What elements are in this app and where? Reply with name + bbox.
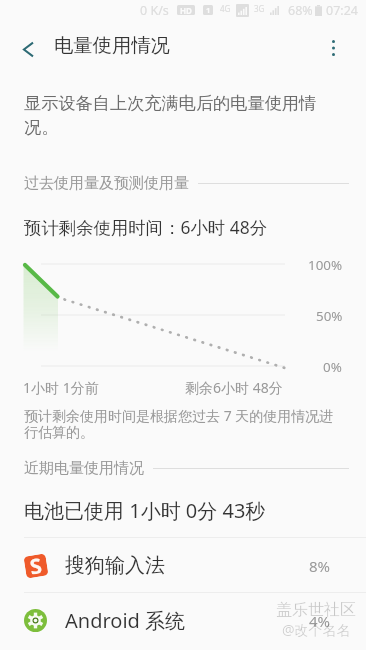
staticText: 100%	[308, 256, 343, 274]
staticText: 预计剩余使用时间是根据您过去 7 天的使用情况进行估算的。	[24, 406, 336, 441]
button[interactable]: More options	[310, 22, 356, 68]
staticText: @改个名名	[282, 620, 351, 639]
staticText: 显示设备自上次充满电后的电量使用情况。	[24, 92, 326, 138]
staticText: 0 K/s	[140, 2, 169, 19]
staticText: S	[28, 554, 43, 575]
staticText: Android 系统	[65, 607, 309, 634]
staticText: 1小时 1分前	[23, 378, 99, 397]
staticText: 近期电量使用情况	[24, 459, 144, 478]
button[interactable]: Android 系统	[0, 593, 366, 648]
staticText: 剩余6小时 48分	[185, 378, 283, 397]
staticText: 1	[206, 5, 211, 15]
staticText: 预计剩余使用时间：6小时 48分	[24, 215, 268, 239]
staticText: 盖乐世社区	[276, 600, 356, 620]
staticText: 68%	[288, 2, 313, 19]
staticText: 过去使用量及预测使用量	[24, 174, 189, 193]
staticText: 07:24	[326, 2, 358, 19]
staticText: 电池已使用 1小时 0分 43秒	[24, 497, 266, 524]
staticText: 搜狗输入法	[65, 553, 309, 578]
staticText: 4G	[220, 3, 231, 14]
staticText: 4%	[309, 611, 331, 631]
staticText: HD	[180, 5, 192, 15]
staticText: 50%	[316, 307, 343, 325]
button[interactable]: Back	[0, 22, 55, 68]
staticText: 0%	[323, 358, 342, 376]
staticText: 3G	[254, 3, 265, 14]
staticText: 电量使用情况	[54, 33, 170, 57]
staticText: 8%	[309, 556, 331, 576]
button[interactable]: S	[0, 538, 366, 593]
